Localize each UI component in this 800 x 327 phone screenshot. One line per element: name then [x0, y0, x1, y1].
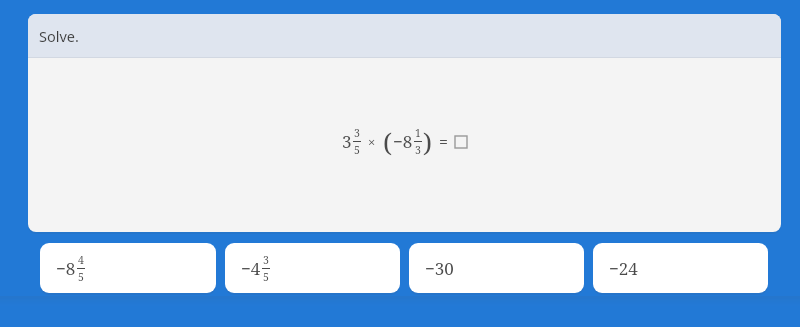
- staticText: =: [439, 131, 448, 153]
- button[interactable]: Answer choice negative 24: [593, 243, 768, 293]
- staticText: −24: [609, 257, 638, 280]
- staticText: 3: [354, 126, 360, 140]
- staticText: 3: [415, 143, 421, 157]
- staticText: (: [383, 124, 392, 159]
- staticText: −8: [56, 257, 76, 280]
- staticText: ×: [368, 133, 376, 151]
- staticText: 5: [263, 270, 269, 284]
- staticText: 5: [78, 270, 84, 284]
- button[interactable]: Answer choice negative 4 and 3 fifths: [225, 243, 400, 293]
- staticText: 3: [342, 130, 352, 153]
- staticText: ): [423, 124, 432, 159]
- staticText: 4: [78, 253, 84, 267]
- button[interactable]: Answer choice negative 8 and 4 fifths: [40, 243, 216, 293]
- staticText: 5: [354, 143, 360, 157]
- staticText: 1: [415, 126, 421, 140]
- staticText: −8: [393, 130, 413, 153]
- staticText: −30: [425, 257, 454, 280]
- button[interactable]: Answer choice negative 30: [409, 243, 584, 293]
- staticText: −4: [241, 257, 261, 280]
- staticText: 3: [263, 253, 269, 267]
- staticText: Solve.: [39, 26, 79, 46]
